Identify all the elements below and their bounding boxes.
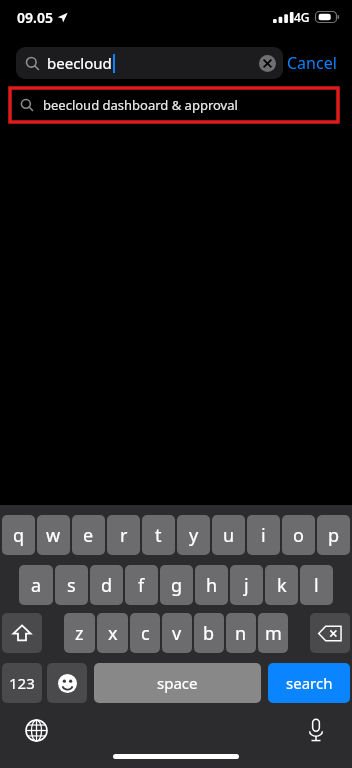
staticText: f xyxy=(138,573,145,598)
button[interactable]: p xyxy=(317,515,350,555)
button[interactable]: q xyxy=(2,515,35,555)
staticText: 09.05 xyxy=(17,8,53,27)
staticText: j xyxy=(244,573,249,598)
button[interactable]: 123 xyxy=(2,663,42,703)
button[interactable]: beecloud xyxy=(16,47,283,79)
staticText: w xyxy=(46,523,61,548)
button[interactable]: g xyxy=(160,565,193,605)
button[interactable]: k xyxy=(265,565,298,605)
staticText: beecloud dashboard & approval xyxy=(43,96,238,114)
button[interactable]: Shift xyxy=(2,613,42,653)
staticText: beecloud xyxy=(47,53,112,73)
button[interactable]: Cancel xyxy=(283,48,341,78)
button[interactable]: Backspace xyxy=(310,613,350,653)
button[interactable]: c xyxy=(130,613,160,653)
staticText: r xyxy=(120,523,128,548)
staticText: n xyxy=(235,621,247,646)
button[interactable]: beecloud dashboard & approval xyxy=(10,88,338,122)
staticText: t xyxy=(155,523,162,548)
button[interactable]: u xyxy=(212,515,245,555)
staticText: h xyxy=(206,573,218,598)
staticText: s xyxy=(67,573,76,598)
button[interactable]: a xyxy=(19,565,53,605)
button[interactable]: w xyxy=(37,515,70,555)
button[interactable]: d xyxy=(90,565,123,605)
staticText: b xyxy=(203,621,215,646)
button[interactable]: b xyxy=(194,613,224,653)
staticText: a xyxy=(31,573,42,598)
staticText: g xyxy=(171,573,183,598)
staticText: m xyxy=(265,621,282,646)
staticText: x xyxy=(108,621,118,646)
button[interactable]: z xyxy=(64,613,95,653)
staticText: Cancel xyxy=(287,52,337,74)
button[interactable]: search xyxy=(268,663,350,703)
staticText: o xyxy=(293,523,304,548)
button[interactable]: space xyxy=(94,663,261,703)
staticText: i xyxy=(261,523,266,548)
staticText: 4G xyxy=(294,9,310,25)
button[interactable]: e xyxy=(72,515,105,555)
staticText: u xyxy=(223,523,235,548)
staticText: z xyxy=(75,621,84,646)
button[interactable]: m xyxy=(258,613,288,653)
button[interactable]: f xyxy=(125,565,158,605)
staticText: v xyxy=(172,621,182,646)
button[interactable]: j xyxy=(230,565,263,605)
button[interactable]: Dictation xyxy=(301,715,331,745)
button[interactable]: Change keyboard language xyxy=(21,715,51,745)
staticText: y xyxy=(189,523,199,548)
staticText: 123 xyxy=(9,673,35,693)
staticText: d xyxy=(101,573,113,598)
staticText: k xyxy=(277,573,287,598)
button[interactable]: n xyxy=(226,613,256,653)
button[interactable]: v xyxy=(162,613,192,653)
staticText: e xyxy=(83,523,94,548)
button[interactable]: Emoji xyxy=(47,663,87,703)
button[interactable]: i xyxy=(247,515,280,555)
button[interactable]: o xyxy=(282,515,315,555)
button[interactable]: s xyxy=(55,565,88,605)
button[interactable]: y xyxy=(177,515,210,555)
button[interactable]: r xyxy=(107,515,140,555)
staticText: q xyxy=(13,523,25,548)
button[interactable]: h xyxy=(195,565,228,605)
staticText: space xyxy=(157,673,198,693)
staticText: search xyxy=(286,673,333,693)
button[interactable]: x xyxy=(97,613,128,653)
staticText: p xyxy=(328,523,340,548)
button[interactable]: l xyxy=(300,565,333,605)
staticText: l xyxy=(314,573,319,598)
button[interactable]: Clear text xyxy=(259,55,276,72)
staticText: c xyxy=(141,621,150,646)
button[interactable]: t xyxy=(142,515,175,555)
